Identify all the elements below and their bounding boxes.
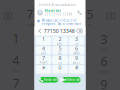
staticText: 77150 13348: [44, 27, 75, 35]
button[interactable]: 8: [52, 55, 68, 64]
staticText: 7: [42, 54, 45, 61]
staticText: 4: [42, 45, 45, 52]
staticText: GHI: [41, 52, 46, 55]
staticText: Voice call: [44, 78, 58, 81]
button[interactable]: ∗: [36, 65, 51, 73]
staticText: 6: [75, 45, 78, 52]
button[interactable]: 7: [36, 55, 51, 64]
button[interactable]: 4: [36, 46, 51, 54]
button[interactable]: Back: [36, 27, 43, 35]
staticText: 9: [75, 54, 78, 61]
staticText: 4: [12, 52, 19, 68]
staticText: 9: [100, 76, 107, 90]
button[interactable]: 5: [52, 46, 68, 54]
button[interactable]: 0: [52, 65, 68, 73]
button[interactable]: 9: [69, 55, 84, 64]
staticText: +91 77150 13348: [44, 13, 72, 16]
staticText: ABC: [57, 42, 63, 46]
staticText: 5: [58, 45, 61, 52]
button[interactable]: Video call: [62, 77, 81, 83]
button[interactable]: #: [69, 65, 84, 73]
staticText: JKL: [58, 52, 62, 55]
staticText: DEF: [74, 42, 78, 46]
button[interactable]: 6: [69, 46, 84, 54]
staticText: TUV: [57, 61, 62, 65]
staticText: Messages are end-to-end encrypted. Tap t…: [42, 19, 83, 26]
button[interactable]: Delete: [75, 27, 83, 34]
staticText: 6: [100, 53, 107, 69]
staticText: 3: [100, 31, 107, 47]
staticText: Verified Business Account: [38, 3, 75, 7]
staticText: 1: [42, 35, 45, 42]
staticText: Video call: [66, 78, 81, 81]
staticText: +: [59, 71, 61, 74]
button[interactable]: 1: [36, 36, 51, 45]
staticText: ∗: [41, 64, 45, 71]
staticText: 0: [58, 64, 61, 71]
staticText: WXYZ: [72, 61, 80, 65]
staticText: 7: [26, 6, 33, 22]
button[interactable]: Voice call: [39, 77, 58, 83]
staticText: PQRS: [40, 61, 47, 65]
button[interactable]: 2: [52, 36, 68, 45]
staticText: 2: [58, 35, 61, 42]
staticText: 1: [12, 30, 19, 46]
staticText: 5: [86, 6, 93, 22]
staticText: 8: [58, 54, 61, 61]
staticText: #: [75, 64, 78, 71]
button[interactable]: Call: [76, 9, 83, 16]
staticText: Bharat Gas: [44, 9, 60, 13]
staticText: 3: [75, 35, 78, 42]
staticText: 7: [12, 75, 19, 90]
button[interactable]: 3: [69, 36, 84, 45]
staticText: MNO: [73, 52, 79, 55]
